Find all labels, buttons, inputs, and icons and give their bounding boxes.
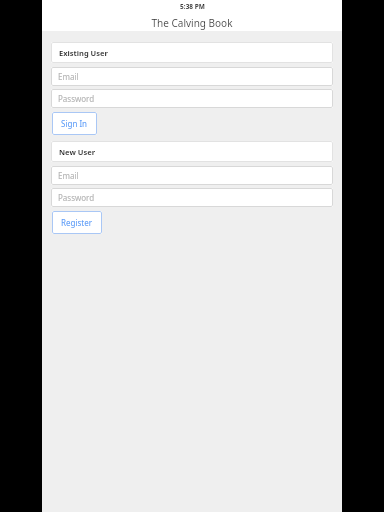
button[interactable]: Email	[51, 67, 333, 86]
staticText: New User	[59, 147, 96, 157]
staticText: 5:38 PM	[180, 2, 205, 11]
staticText: Existing User	[59, 48, 108, 58]
button[interactable]: Sign In	[52, 112, 97, 135]
staticText: Password	[58, 192, 95, 203]
staticText: Password	[58, 93, 95, 104]
staticText: Register	[61, 217, 93, 228]
button[interactable]: New User	[51, 141, 333, 162]
staticText: Email	[58, 170, 79, 181]
staticText: The Calving Book	[151, 16, 233, 30]
button[interactable]: Password	[51, 89, 333, 108]
button[interactable]: Email	[51, 166, 333, 185]
button[interactable]: Password	[51, 188, 333, 207]
button[interactable]: Register	[52, 211, 102, 234]
staticText: Email	[58, 71, 79, 82]
staticText: Sign In	[61, 118, 88, 129]
button[interactable]: Existing User	[51, 42, 333, 63]
